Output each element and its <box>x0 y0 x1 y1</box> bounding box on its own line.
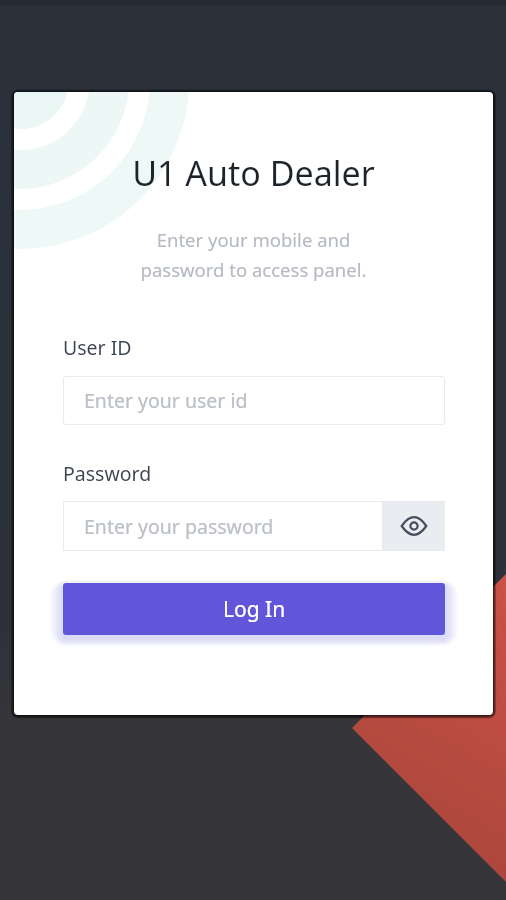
button[interactable]: Enter your password <box>63 501 383 551</box>
staticText: Enter your password <box>84 513 274 540</box>
button[interactable]: Enter your user id <box>63 376 445 425</box>
staticText: Log In <box>223 595 286 624</box>
staticText: User ID <box>63 334 132 361</box>
staticText: Enter your user id <box>84 387 248 414</box>
staticText: U1 Auto Dealer <box>14 150 493 196</box>
button[interactable]: Log In <box>63 583 445 635</box>
staticText: Enter your mobile and password to access… <box>14 227 493 283</box>
staticText: Password <box>63 460 152 487</box>
button[interactable]: Show password <box>383 501 445 551</box>
